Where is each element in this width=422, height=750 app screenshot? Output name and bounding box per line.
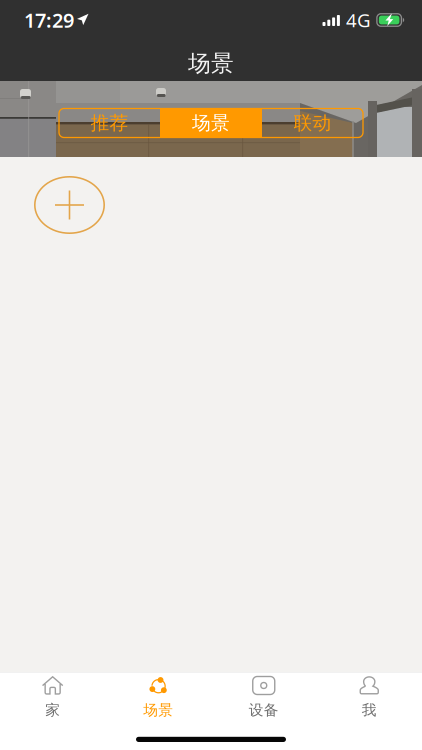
staticText: 我 (362, 701, 377, 719)
staticText: 场景 (188, 50, 234, 77)
staticText: 联动 (293, 111, 331, 134)
button[interactable]: 推荐 (59, 108, 160, 137)
button[interactable]: 我 (316, 672, 422, 722)
staticText: 场景 (143, 701, 173, 719)
button[interactable]: 设备 (211, 672, 316, 722)
staticText: 设备 (249, 701, 279, 719)
button[interactable]: 场景 (160, 108, 262, 137)
staticText: 场景 (192, 111, 230, 134)
staticText: 推荐 (90, 111, 128, 134)
button[interactable]: 家 (0, 672, 105, 722)
button[interactable]: Add scene (34, 176, 105, 234)
button[interactable]: 场景 (105, 672, 211, 722)
staticText: 家 (45, 701, 60, 719)
staticText: 4G (346, 8, 371, 32)
staticText: 17:29 (24, 7, 74, 33)
button[interactable]: 联动 (262, 108, 363, 137)
